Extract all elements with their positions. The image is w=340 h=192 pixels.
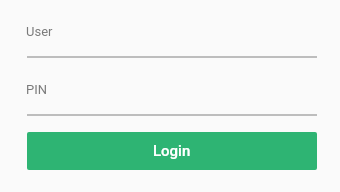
button[interactable]: User (27, 20, 317, 58)
button[interactable]: PIN (27, 78, 317, 116)
staticText: User (26, 24, 53, 39)
staticText: PIN (26, 82, 48, 97)
button[interactable]: Login (27, 132, 317, 170)
staticText: Login (153, 142, 191, 160)
